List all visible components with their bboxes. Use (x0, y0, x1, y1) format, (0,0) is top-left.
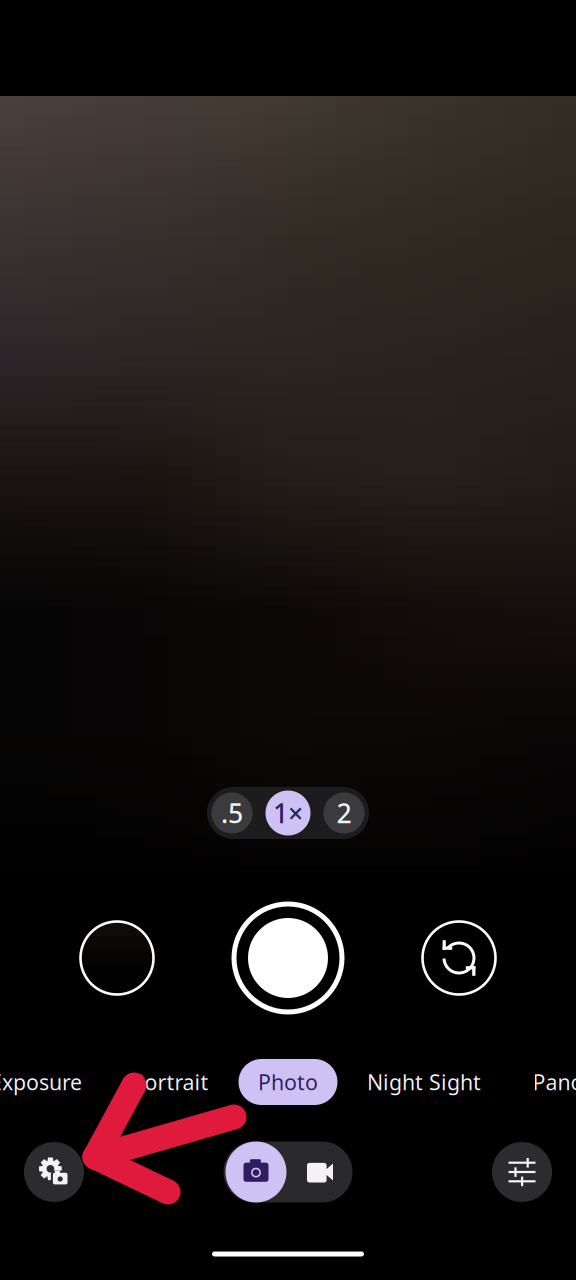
button[interactable]: Pano (532, 1068, 576, 1096)
button[interactable]: 1x zoom (265, 790, 310, 835)
button[interactable]: Photo mode (225, 1141, 286, 1202)
staticText: Night Sight (367, 1068, 481, 1096)
button[interactable]: Photo (238, 1059, 337, 1105)
staticText: Portrait (131, 1068, 208, 1096)
staticText: 1× (273, 795, 303, 831)
button[interactable]: Gallery (80, 921, 153, 994)
button[interactable]: Camera settings (24, 1142, 84, 1202)
button[interactable]: Exposure (0, 1068, 82, 1096)
button[interactable]: Switch camera (422, 921, 495, 994)
staticText: .5 (221, 795, 243, 831)
staticText: 2 (336, 795, 351, 831)
button[interactable]: Night Sight (367, 1068, 481, 1096)
button[interactable]: 0.5x zoom (211, 792, 252, 833)
button[interactable]: More settings (492, 1142, 552, 1202)
staticText: Photo (258, 1068, 318, 1096)
button[interactable]: Shutter (233, 903, 343, 1013)
button[interactable]: Video mode (290, 1141, 350, 1202)
staticText: Pano (532, 1068, 576, 1096)
button[interactable]: Portrait (131, 1068, 208, 1096)
staticText: Exposure (0, 1068, 82, 1096)
button[interactable]: 2x zoom (323, 792, 364, 833)
